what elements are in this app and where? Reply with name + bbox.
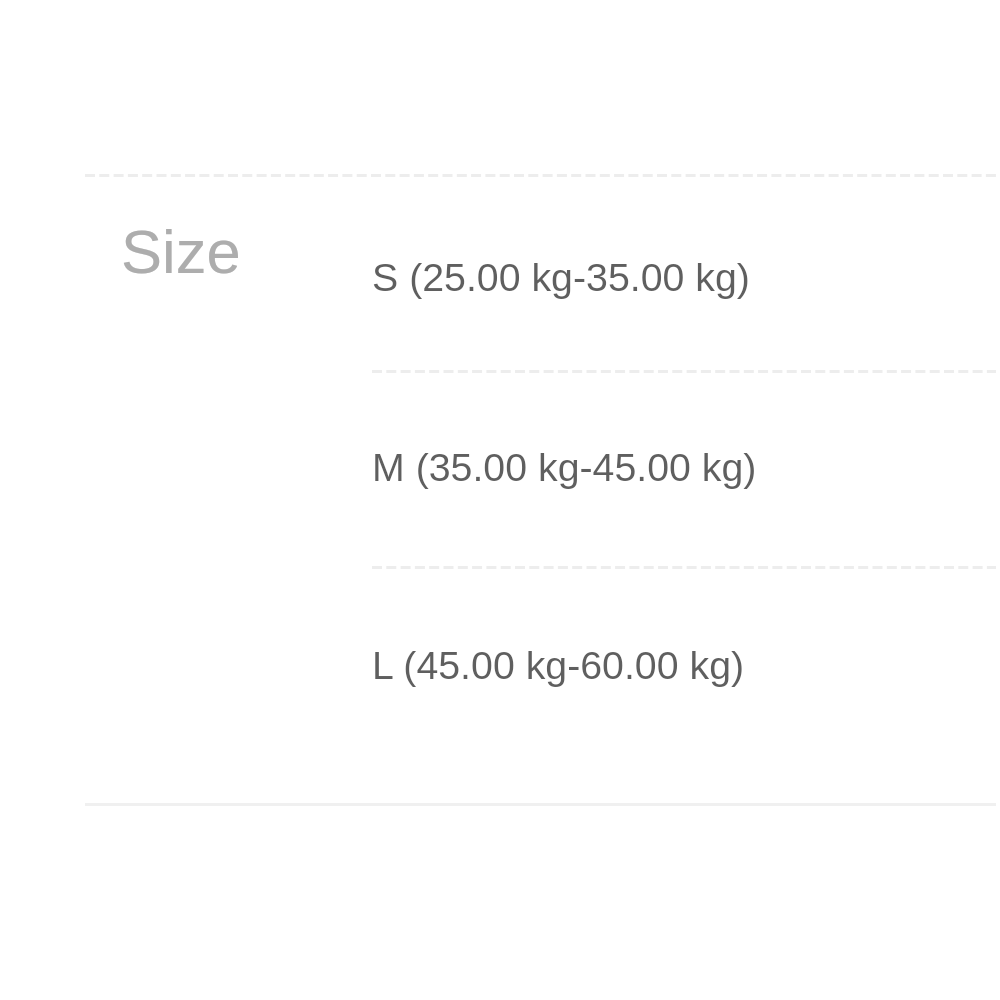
staticText: S (25.00 kg-35.00 kg) <box>372 255 750 299</box>
button[interactable]: S (25.00 kg-35.00 kg) <box>372 177 996 370</box>
button[interactable]: L (45.00 kg-60.00 kg) <box>372 569 996 803</box>
button[interactable]: M (35.00 kg-45.00 kg) <box>372 373 996 566</box>
staticText: M (35.00 kg-45.00 kg) <box>372 445 757 489</box>
staticText: Size <box>121 217 241 286</box>
staticText: L (45.00 kg-60.00 kg) <box>372 643 745 687</box>
